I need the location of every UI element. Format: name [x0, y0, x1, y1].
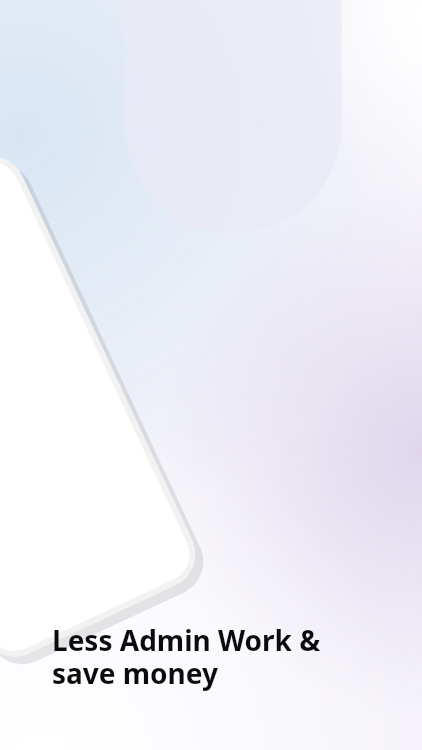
staticText: Less Admin Work & save money: [52, 621, 321, 692]
